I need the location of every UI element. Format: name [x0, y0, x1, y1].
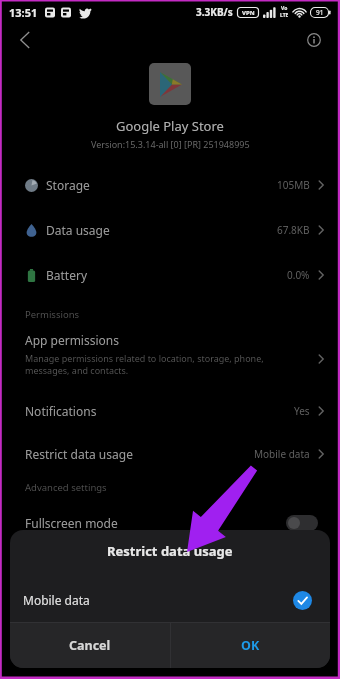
staticText: Permissions [25, 308, 80, 321]
button[interactable] [12, 27, 38, 53]
staticText: Version:15.3.14-all [0] [PR] 251948995 [91, 138, 250, 150]
staticText: Notifications [25, 403, 97, 419]
staticText: 3.3KB/s [196, 5, 233, 19]
button[interactable]: App permissions [0, 332, 340, 376]
button[interactable]: Notifications [0, 389, 340, 433]
staticText: 67.8KB [277, 223, 310, 237]
staticText: Manage permissions related to location, … [25, 352, 316, 376]
staticText: 0.0% [287, 268, 310, 282]
staticText: App permissions [25, 332, 119, 348]
staticText: Mobile data [254, 447, 310, 461]
button[interactable]: OK [170, 622, 330, 668]
staticText: Battery [46, 267, 88, 283]
staticText: Yes [294, 404, 310, 418]
staticText: Data usage [46, 222, 110, 238]
staticText: Restrict data usage [25, 446, 133, 462]
button[interactable]: Cancel [10, 622, 170, 668]
staticText: Storage [46, 177, 90, 193]
staticText: Cancel [69, 637, 111, 654]
staticText: Fullscreen mode [25, 515, 118, 531]
button[interactable]: Mobile data [10, 578, 330, 622]
staticText: Advanced settings [25, 481, 107, 494]
staticText: Google Play Store [116, 117, 224, 135]
staticText: Restrict data usage [107, 542, 233, 560]
staticText: Mobile data [23, 592, 90, 608]
staticText: 13:51 [9, 5, 38, 20]
staticText: OK [241, 637, 260, 654]
staticText: Vo [281, 5, 288, 12]
button[interactable]: Battery [0, 253, 340, 297]
button[interactable] [302, 28, 326, 52]
button[interactable]: Data usage [0, 208, 340, 252]
button[interactable]: Restrict data usage [0, 432, 340, 476]
staticText: LTE [280, 12, 289, 19]
button[interactable]: Fullscreen mode [0, 503, 340, 543]
staticText: VPN [242, 9, 255, 17]
staticText: 105MB [277, 178, 310, 192]
button[interactable]: Storage [0, 163, 340, 207]
staticText: 91 [316, 8, 324, 17]
